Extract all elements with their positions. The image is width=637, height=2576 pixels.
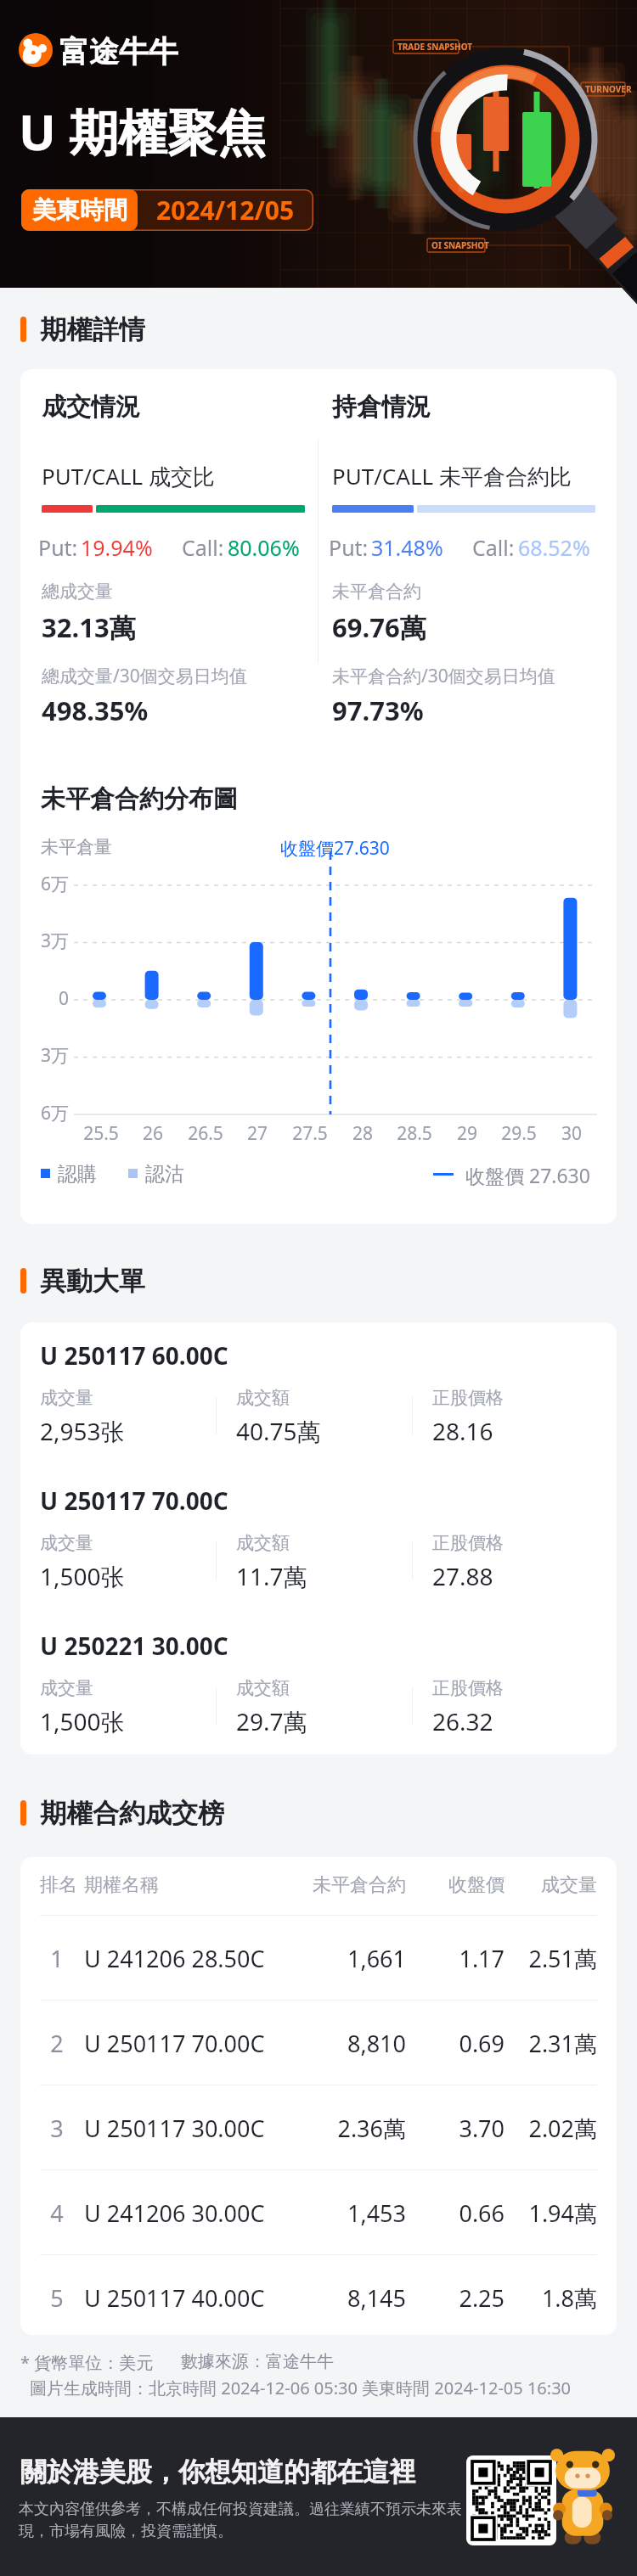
staticText: 25.5: [71, 1121, 131, 1146]
staticText: OI SNAPSHOT: [431, 239, 489, 251]
staticText: 成交額: [236, 1387, 290, 1409]
staticText: 29: [437, 1121, 497, 1146]
staticText: 29.5: [489, 1121, 549, 1146]
staticText: 未平倉量: [41, 836, 112, 858]
staticText: 3.70: [406, 2113, 505, 2144]
staticText: 認購: [58, 1162, 97, 1187]
staticText: 1,500张: [40, 1705, 125, 1737]
staticText: TRADE SNAPSHOT: [397, 41, 473, 53]
staticText: PUT/CALL 成交比: [42, 461, 215, 491]
staticText: TURNOVER: [585, 83, 632, 95]
staticText: 正股價格: [432, 1677, 504, 1699]
staticText: 31.48%: [371, 533, 443, 562]
staticText: 30: [542, 1121, 601, 1146]
staticText: 2.25: [406, 2282, 505, 2314]
staticText: 0.69: [406, 2028, 505, 2059]
staticText: 未平倉合約: [287, 1873, 406, 1897]
staticText: Call:: [472, 533, 515, 562]
staticText: U 250117 30.00C: [84, 2113, 265, 2144]
staticText: 期權合約成交榜: [40, 1797, 224, 1826]
staticText: 27.5: [280, 1121, 340, 1146]
staticText: 6万: [22, 1101, 69, 1125]
staticText: 28.5: [385, 1121, 444, 1146]
staticText: 2.51萬: [499, 1943, 597, 1974]
staticText: 成交額: [236, 1677, 290, 1699]
staticText: 收盤價27.630: [280, 836, 390, 861]
staticText: 2.31萬: [499, 2028, 597, 2059]
staticText: 1: [40, 1943, 74, 1974]
staticText: 數據來源：富途牛牛: [181, 2351, 334, 2372]
staticText: 27.88: [432, 1560, 493, 1592]
staticText: U 250117 70.00C: [40, 1484, 228, 1517]
staticText: 正股價格: [432, 1387, 504, 1409]
staticText: 排名: [40, 1873, 77, 1897]
staticText: 1.8萬: [499, 2282, 597, 2314]
staticText: 27: [228, 1121, 287, 1146]
staticText: 1,453: [287, 2197, 406, 2229]
staticText: 本文內容僅供參考，不構成任何投資建議。過往業績不預示未來表: [19, 2500, 462, 2519]
staticText: 26: [123, 1121, 183, 1146]
staticText: 富途牛牛: [59, 33, 178, 70]
staticText: 期權名稱: [84, 1873, 159, 1897]
staticText: 收盤價: [406, 1873, 505, 1897]
staticText: Call:: [182, 533, 224, 562]
staticText: 總成交量: [42, 581, 113, 603]
staticText: 成交量: [40, 1532, 93, 1554]
staticText: 69.76萬: [332, 609, 426, 645]
staticText: 3万: [22, 929, 69, 953]
staticText: 圖片生成時間：北京時間 2024-12-06 05:30 美東時間 2024-1…: [30, 2377, 572, 2399]
staticText: PUT/CALL 未平倉合約比: [332, 461, 572, 491]
staticText: 成交情況: [42, 391, 140, 423]
staticText: 26.5: [176, 1121, 235, 1146]
staticText: 總成交量/30個交易日均值: [42, 664, 247, 688]
staticText: 4: [40, 2197, 74, 2229]
staticText: 未平倉合約分布圖: [41, 783, 238, 815]
staticText: U 241206 30.00C: [84, 2197, 265, 2229]
staticText: 成交量: [499, 1873, 597, 1897]
staticText: 3万: [22, 1043, 69, 1068]
staticText: 1.17: [406, 1943, 505, 1974]
staticText: 現，市場有風險，投資需謹慎。: [19, 2522, 233, 2541]
staticText: 成交額: [236, 1532, 290, 1554]
staticText: U 241206 28.50C: [84, 1943, 265, 1974]
staticText: 關於港美股，你想知道的都在這裡: [20, 2455, 415, 2489]
staticText: 19.94%: [81, 533, 153, 562]
staticText: 未平倉合約/30個交易日均值: [332, 664, 555, 688]
staticText: 6万: [22, 872, 69, 896]
staticText: 8,810: [287, 2028, 406, 2059]
staticText: 32.13萬: [42, 609, 136, 645]
staticText: U 250221 30.00C: [40, 1630, 228, 1662]
staticText: 80.06%: [228, 533, 300, 562]
staticText: 成交量: [40, 1387, 93, 1409]
staticText: 認沽: [145, 1162, 184, 1187]
staticText: 正股價格: [432, 1532, 504, 1554]
staticText: 收盤價 27.630: [465, 1162, 590, 1188]
staticText: 成交量: [40, 1677, 93, 1699]
staticText: 3: [40, 2113, 74, 2144]
staticText: Put:: [38, 533, 78, 562]
staticText: U 250117 40.00C: [84, 2282, 265, 2314]
staticText: 未平倉合約: [332, 581, 421, 603]
staticText: 40.75萬: [236, 1415, 321, 1447]
staticText: 0.66: [406, 2197, 505, 2229]
staticText: 1,661: [287, 1943, 406, 1974]
staticText: 持倉情況: [332, 391, 431, 423]
staticText: 28.16: [432, 1415, 493, 1447]
staticText: 498.35%: [42, 693, 149, 728]
staticText: 28: [333, 1121, 392, 1146]
staticText: 11.7萬: [236, 1560, 307, 1592]
staticText: 2024/12/05: [156, 193, 295, 227]
staticText: 8,145: [287, 2282, 406, 2314]
staticText: 0: [22, 986, 69, 1011]
staticText: 2,953张: [40, 1415, 125, 1447]
staticText: 1,500张: [40, 1560, 125, 1592]
staticText: 2: [40, 2028, 74, 2059]
staticText: 68.52%: [518, 533, 590, 562]
staticText: 29.7萬: [236, 1705, 307, 1737]
staticText: 異動大單: [40, 1265, 145, 1294]
staticText: U 250117 70.00C: [84, 2028, 265, 2059]
staticText: 美東時間: [32, 195, 127, 225]
staticText: Put:: [329, 533, 369, 562]
staticText: 1.94萬: [499, 2197, 597, 2229]
staticText: 97.73%: [332, 693, 424, 728]
